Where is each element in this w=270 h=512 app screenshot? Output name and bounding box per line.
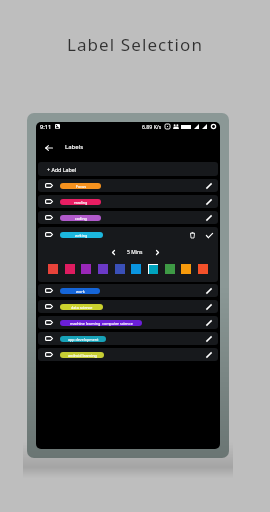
button[interactable]: data science <box>38 300 218 313</box>
button[interactable]: Edit <box>203 180 214 191</box>
button[interactable]: android learning <box>38 348 218 361</box>
staticText: machine learning computer science <box>70 321 133 326</box>
staticText: 6.89 K/s <box>142 123 162 130</box>
staticText: reading <box>74 200 88 205</box>
button[interactable]: Back <box>40 139 57 156</box>
button[interactable]: coding <box>38 211 218 224</box>
button[interactable]: Decrease duration <box>108 247 118 257</box>
button[interactable]: Delete <box>187 230 197 240</box>
staticText: Labels <box>65 143 84 151</box>
button[interactable]: work <box>38 284 218 297</box>
button[interactable]: machine learning computer science <box>38 316 218 329</box>
button[interactable]: + Add Label <box>38 162 218 176</box>
staticText: 9:11 <box>40 123 52 131</box>
button[interactable]: Edit <box>203 212 214 223</box>
button[interactable]: Edit <box>203 285 214 296</box>
button[interactable]: Increase duration <box>152 247 162 257</box>
button[interactable]: Edit <box>203 301 214 312</box>
button[interactable]: Edit <box>203 349 214 360</box>
button[interactable]: Color swatch <box>148 264 158 274</box>
staticText: work <box>76 289 85 294</box>
button[interactable]: Edit <box>203 317 214 328</box>
button[interactable]: app development <box>38 332 218 345</box>
staticText: app development <box>68 337 99 342</box>
staticText: data science <box>71 305 93 310</box>
staticText: Focus <box>76 184 86 189</box>
staticText: 5 Mins <box>127 249 143 256</box>
staticText: coding <box>75 216 87 221</box>
button[interactable]: Edit <box>203 196 214 207</box>
staticText: + Add Label <box>47 166 77 173</box>
staticText: android learning <box>68 353 97 358</box>
staticText: writing <box>75 233 88 238</box>
staticText: Label Selection <box>0 33 270 56</box>
button[interactable]: Focus <box>38 179 218 192</box>
button[interactable]: Confirm <box>204 230 214 240</box>
button[interactable]: reading <box>38 195 218 208</box>
button[interactable]: Edit <box>203 333 214 344</box>
